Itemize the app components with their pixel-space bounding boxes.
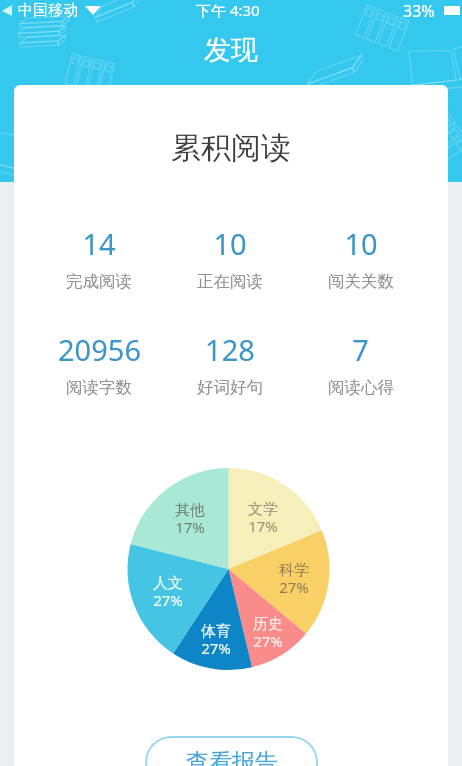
staticText: 20956: [58, 330, 141, 369]
staticText: 其他 17%: [175, 501, 205, 538]
staticText: 128: [205, 330, 255, 369]
staticText: 阅读心得: [328, 377, 394, 398]
staticText: 下午 4:30: [196, 0, 260, 20]
staticText: 10: [344, 224, 378, 263]
staticText: 10: [213, 224, 247, 263]
staticText: 文学 17%: [248, 500, 278, 537]
staticText: 发现: [204, 33, 258, 67]
staticText: 体育 27%: [201, 622, 231, 659]
staticText: 33%: [403, 0, 435, 20]
staticText: 阅读字数: [66, 377, 132, 398]
staticText: 科学 27%: [279, 561, 309, 598]
staticText: 闯关关数: [328, 271, 394, 292]
staticText: 人文 27%: [153, 574, 183, 611]
staticText: 历史 27%: [253, 615, 283, 652]
staticText: 好词好句: [197, 377, 263, 398]
staticText: 查看报告: [186, 748, 278, 766]
button[interactable]: 查看报告: [145, 736, 318, 766]
staticText: 完成阅读: [66, 271, 132, 292]
staticText: 14: [82, 224, 116, 263]
staticText: 累积阅读: [171, 129, 291, 167]
staticText: 7: [352, 330, 369, 369]
staticText: 正在阅读: [197, 271, 263, 292]
staticText: 中国移动: [18, 1, 78, 20]
